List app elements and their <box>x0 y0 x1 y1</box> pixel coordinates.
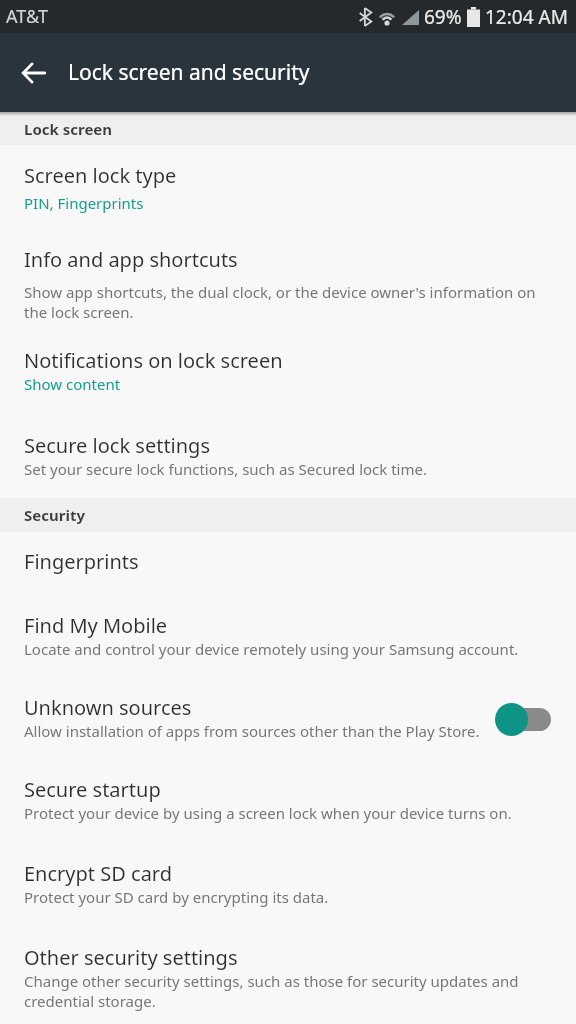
staticText: Fingerprints <box>24 548 139 575</box>
staticText: Encrypt SD card <box>24 860 173 887</box>
button[interactable]: Info and app shortcuts <box>0 235 576 335</box>
staticText: Allow installation of apps from sources … <box>24 721 480 741</box>
staticText: Change other security settings, such as … <box>24 971 519 1011</box>
staticText: Show app shortcuts, the dual clock, or t… <box>24 282 536 322</box>
button[interactable]: Unknown sources <box>0 678 576 760</box>
staticText: Screen lock type <box>24 162 177 189</box>
button[interactable]: Other security settings <box>0 928 576 1024</box>
button[interactable] <box>14 53 54 93</box>
staticText: Info and app shortcuts <box>24 246 238 273</box>
button[interactable]: Screen lock type <box>0 145 576 235</box>
staticText: PIN, Fingerprints <box>24 193 144 213</box>
button[interactable]: Notifications on lock screen <box>0 335 576 425</box>
staticText: 12:04 AM <box>485 4 568 30</box>
staticText: Security <box>24 505 85 525</box>
staticText: Protect your device by using a screen lo… <box>24 803 512 823</box>
button[interactable]: Find My Mobile <box>0 596 576 678</box>
button[interactable]: Secure startup <box>0 760 576 844</box>
staticText: Secure lock settings <box>24 432 210 459</box>
staticText: Lock screen <box>24 119 113 139</box>
staticText: 69% <box>424 4 462 30</box>
staticText: Other security settings <box>24 944 238 971</box>
staticText: Secure startup <box>24 776 161 803</box>
staticText: Notifications on lock screen <box>24 347 283 374</box>
staticText: AT&T <box>6 4 48 29</box>
staticText: Protect your SD card by encrypting its d… <box>24 887 329 907</box>
staticText: Locate and control your device remotely … <box>24 639 519 659</box>
staticText: Show content <box>24 374 121 394</box>
staticText: Lock screen and security <box>68 58 310 87</box>
staticText: Find My Mobile <box>24 612 168 639</box>
staticText: Unknown sources <box>24 694 192 721</box>
button[interactable]: Secure lock settings <box>0 425 576 498</box>
button[interactable]: Fingerprints <box>0 532 576 596</box>
staticText: Set your secure lock functions, such as … <box>24 459 427 479</box>
button[interactable] <box>495 702 551 736</box>
button[interactable]: Encrypt SD card <box>0 844 576 928</box>
